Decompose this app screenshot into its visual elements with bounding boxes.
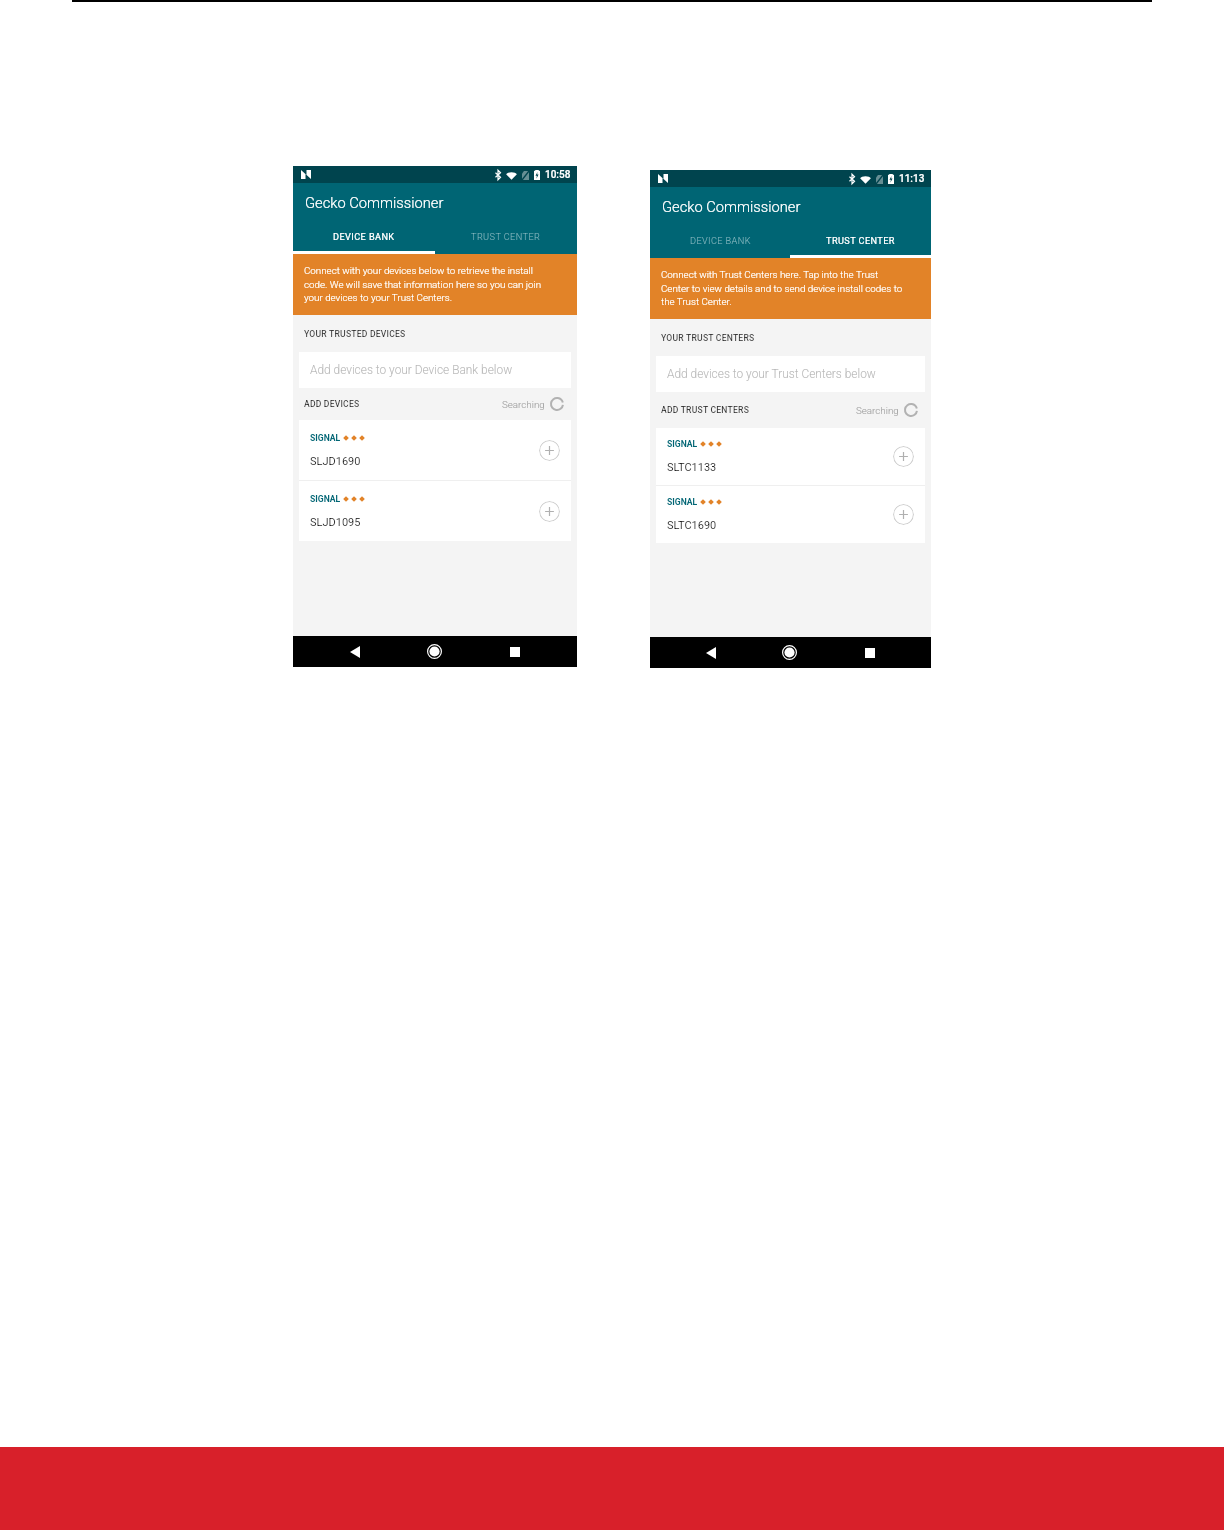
staticText: SLJD1690	[310, 455, 361, 468]
button[interactable]: Add SLTC1133	[893, 446, 914, 467]
button[interactable]: Home	[416, 636, 453, 667]
staticText: DEVICE BANK	[333, 231, 395, 242]
staticText: TRUST CENTER	[826, 235, 895, 246]
staticText: SIGNAL	[310, 494, 341, 504]
button[interactable]: Recent apps	[453, 636, 577, 667]
staticText: Searching	[502, 399, 545, 410]
staticText: Add devices to your Device Bank below	[310, 363, 513, 377]
button[interactable]: Home	[771, 637, 808, 668]
staticText: Connect with your devices below to retri…	[304, 265, 542, 303]
staticText: SIGNAL	[667, 439, 698, 449]
button[interactable]: SIGNAL	[656, 428, 925, 485]
button[interactable]: SIGNAL	[656, 486, 925, 543]
staticText: 11:13	[899, 173, 925, 185]
staticText: ADD TRUST CENTERS	[661, 405, 750, 415]
staticText: YOUR TRUSTED DEVICES	[304, 329, 406, 339]
button[interactable]: Add SLJD1690	[539, 440, 560, 461]
staticText: Connect with Trust Centers here. Tap int…	[661, 269, 903, 307]
button[interactable]: DEVICE BANK	[650, 226, 790, 258]
staticText: TRUST CENTER	[471, 231, 541, 242]
button[interactable]: Back	[293, 636, 416, 667]
staticText: Add devices to your Trust Centers below	[667, 367, 876, 381]
button[interactable]: Back	[650, 637, 771, 668]
button[interactable]: TRUST CENTER	[790, 226, 931, 258]
staticText: SIGNAL	[667, 497, 698, 507]
staticText: SLTC1690	[667, 519, 717, 532]
staticText: 10:58	[545, 169, 571, 181]
staticText: DEVICE BANK	[690, 235, 751, 246]
staticText: Gecko Commissioner	[662, 198, 801, 215]
staticText: SLTC1133	[667, 461, 717, 474]
button[interactable]: Add SLTC1690	[893, 504, 914, 525]
button[interactable]: TRUST CENTER	[435, 222, 577, 254]
staticText: SLJD1095	[310, 516, 361, 529]
staticText: SIGNAL	[310, 433, 341, 443]
staticText: ADD DEVICES	[304, 399, 360, 409]
button[interactable]: Add SLJD1095	[539, 501, 560, 522]
button[interactable]: SIGNAL	[299, 420, 571, 480]
button[interactable]: DEVICE BANK	[293, 222, 435, 254]
staticText: YOUR TRUST CENTERS	[661, 333, 755, 343]
button[interactable]: SIGNAL	[299, 481, 571, 541]
staticText: Searching	[856, 405, 899, 416]
button[interactable]: Recent apps	[808, 637, 931, 668]
staticText: Gecko Commissioner	[305, 194, 444, 211]
